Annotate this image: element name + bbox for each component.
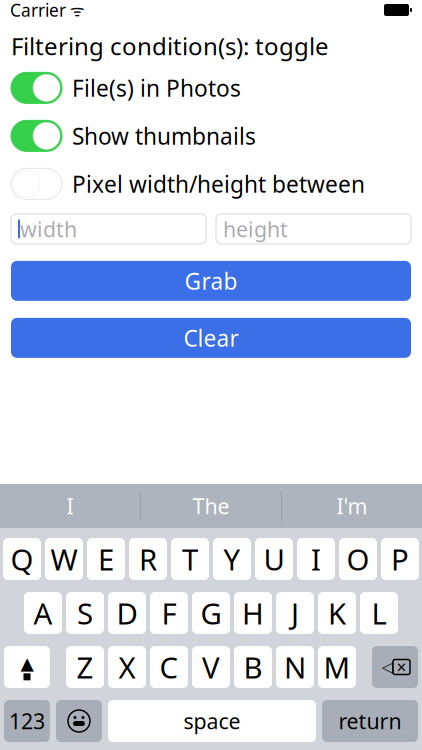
button[interactable]: File(s) in Photos: [0, 68, 422, 108]
staticText: O: [346, 539, 369, 578]
staticText: Pixel width/height between: [72, 169, 365, 199]
button[interactable]: I: [0, 484, 140, 528]
button[interactable]: B: [234, 646, 272, 688]
button[interactable]: C: [150, 646, 188, 688]
staticText: H: [242, 593, 264, 632]
button[interactable]: space: [108, 700, 316, 742]
staticText: space: [183, 707, 240, 735]
staticText: Grab: [184, 266, 237, 296]
button[interactable]: V: [192, 646, 230, 688]
staticText: Y: [223, 539, 240, 578]
staticText: S: [77, 593, 93, 632]
staticText: ᯤ: [66, 0, 85, 21]
staticText: Q: [10, 539, 33, 578]
button[interactable]: F: [150, 592, 188, 634]
staticText: ×: [396, 655, 406, 678]
staticText: Clear: [183, 323, 238, 353]
button[interactable]: E: [87, 538, 125, 580]
staticText: W: [50, 539, 77, 578]
button[interactable]: Q: [3, 538, 41, 580]
button[interactable]: A: [24, 592, 62, 634]
staticText: B: [243, 647, 262, 686]
button[interactable]: Shift: [4, 646, 50, 688]
staticText: C: [159, 647, 178, 686]
staticText: T: [182, 539, 198, 578]
button[interactable]: L: [360, 592, 398, 634]
button[interactable]: Show thumbnails: [0, 116, 422, 156]
button[interactable]: X: [108, 646, 146, 688]
button[interactable]: 123: [4, 700, 50, 742]
button[interactable]: I: [297, 538, 335, 580]
button[interactable]: H: [234, 592, 272, 634]
staticText: G: [200, 593, 221, 632]
staticText: K: [328, 593, 346, 632]
staticText: I: [311, 539, 321, 578]
staticText: Show thumbnails: [72, 121, 256, 151]
staticText: X: [118, 647, 135, 686]
staticText: I: [66, 492, 73, 520]
button[interactable]: S: [66, 592, 104, 634]
button[interactable]: The: [141, 484, 281, 528]
button[interactable]: Z: [66, 646, 104, 688]
staticText: P: [391, 539, 409, 578]
button[interactable]: R: [129, 538, 167, 580]
staticText: U: [263, 539, 284, 578]
staticText: F: [161, 593, 176, 632]
staticText: N: [284, 647, 306, 686]
staticText: Z: [76, 647, 93, 686]
button[interactable]: Pixel width/height between: [0, 164, 422, 204]
button[interactable]: T: [171, 538, 209, 580]
button[interactable]: J: [276, 592, 314, 634]
staticText: L: [371, 593, 386, 632]
staticText: R: [139, 539, 157, 578]
button[interactable]: Delete: [372, 646, 418, 688]
staticText: ▲: [20, 654, 33, 673]
button[interactable]: D: [108, 592, 146, 634]
staticText: height: [223, 215, 288, 243]
staticText: M: [323, 647, 350, 686]
button[interactable]: Grab: [11, 261, 411, 301]
button[interactable]: G: [192, 592, 230, 634]
button[interactable]: U: [255, 538, 293, 580]
button[interactable]: P: [381, 538, 419, 580]
button[interactable]: return: [322, 700, 418, 742]
button[interactable]: Clear: [11, 318, 411, 358]
staticText: return: [338, 707, 401, 735]
staticText: File(s) in Photos: [72, 73, 241, 103]
button[interactable]: W: [45, 538, 83, 580]
staticText: Carrier: [10, 0, 66, 21]
staticText: 123: [9, 707, 45, 735]
button[interactable]: K: [318, 592, 356, 634]
button[interactable]: Emoji: [56, 700, 102, 742]
staticText: The: [192, 492, 229, 520]
button[interactable]: M: [318, 646, 356, 688]
staticText: I'm: [336, 492, 367, 520]
staticText: width: [20, 215, 77, 243]
button[interactable]: O: [339, 538, 377, 580]
staticText: E: [98, 539, 114, 578]
staticText: V: [202, 647, 220, 686]
button[interactable]: I'm: [282, 484, 422, 528]
staticText: A: [33, 593, 52, 632]
staticText: D: [116, 593, 137, 632]
button[interactable]: Y: [213, 538, 251, 580]
staticText: ◁: [382, 659, 393, 675]
staticText: J: [291, 593, 299, 632]
staticText: Filtering condition(s): toggle: [11, 30, 329, 62]
button[interactable]: N: [276, 646, 314, 688]
